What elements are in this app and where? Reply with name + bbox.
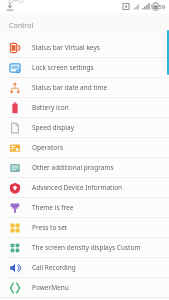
button[interactable]: Advanced Device Information	[0, 178, 169, 197]
staticText: Call Recording	[32, 263, 76, 272]
staticText: Theme is free	[32, 203, 74, 212]
button[interactable]: Status bar Virtual keys	[0, 38, 169, 57]
staticText: Status bar date and time	[32, 83, 108, 92]
staticText: Status bar Virtual keys	[32, 43, 100, 52]
staticText: Other additional programs	[32, 163, 114, 172]
staticText: Press to set	[32, 223, 68, 232]
staticText: Advanced Device Information	[32, 183, 123, 192]
button[interactable]: Operators	[0, 138, 169, 157]
button[interactable]: The screen density displays Custom	[0, 238, 169, 257]
button[interactable]: Other additional programs	[0, 158, 169, 177]
button[interactable]: PowerMenu	[0, 278, 169, 297]
button[interactable]: Speed display	[0, 118, 169, 137]
staticText: Operators	[32, 143, 64, 152]
staticText: PowerMenu	[32, 283, 69, 292]
staticText: Battery icon	[32, 103, 69, 112]
staticText: Speed display	[32, 123, 75, 132]
staticText: 13:59	[150, 3, 166, 11]
button[interactable]: Theme is free	[0, 198, 169, 217]
button[interactable]: Battery icon	[0, 98, 169, 117]
staticText: The screen density displays Custom	[32, 243, 141, 252]
button[interactable]: Call Recording	[0, 258, 169, 277]
button[interactable]: Lock screen settings	[0, 58, 169, 77]
button[interactable]: Status bar date and time	[0, 78, 169, 97]
staticText: Lock screen settings	[32, 63, 94, 72]
button[interactable]: Press to set	[0, 218, 169, 237]
staticText: Control	[9, 21, 34, 31]
